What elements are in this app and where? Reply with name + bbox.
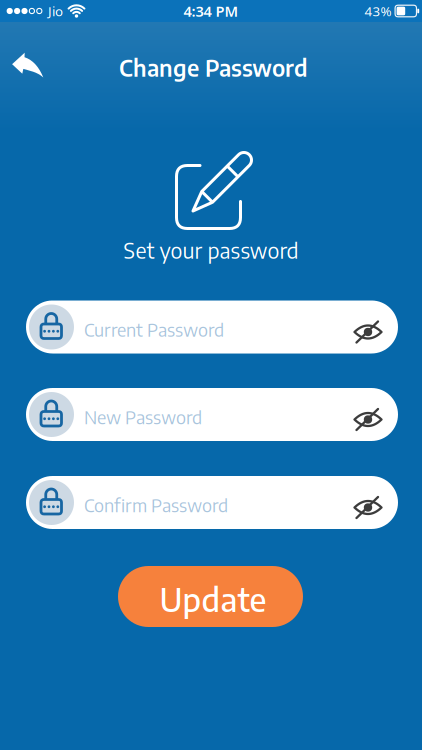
button[interactable]: Update: [118, 566, 303, 627]
staticText: 4:34 PM: [183, 1, 238, 21]
secureTextField[interactable]: Current Password: [26, 300, 398, 353]
secureTextField[interactable]: Confirm Password: [26, 476, 398, 529]
staticText: New Password: [84, 406, 202, 428]
button[interactable]: Show password: [353, 402, 398, 426]
staticText: Change Password: [119, 53, 308, 82]
staticText: Current Password: [84, 318, 224, 341]
secureTextField[interactable]: New Password: [26, 388, 398, 441]
staticText: Confirm Password: [84, 494, 228, 516]
button[interactable]: Back: [0, 41, 53, 87]
button[interactable]: Show password: [353, 490, 398, 514]
staticText: Update: [159, 579, 266, 619]
staticText: Jio: [48, 2, 63, 20]
staticText: 43%: [364, 2, 391, 20]
button[interactable]: Show password: [353, 315, 398, 339]
staticText: Set your password: [123, 237, 298, 263]
